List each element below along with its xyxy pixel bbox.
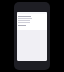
button[interactable] — [17, 19, 47, 21]
button[interactable] — [17, 24, 47, 26]
button[interactable] — [17, 17, 47, 19]
button[interactable] — [17, 15, 47, 17]
button[interactable] — [17, 21, 47, 23]
